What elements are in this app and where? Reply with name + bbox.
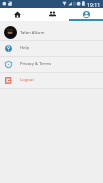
button[interactable]: People: [35, 8, 69, 21]
button[interactable]: Help: [0, 40, 103, 56]
button[interactable]: Logout: [0, 72, 103, 88]
staticText: Tafan Alkum: [20, 30, 45, 36]
staticText: 19:11: [87, 1, 101, 8]
staticText: Logout: [20, 77, 34, 83]
staticText: Help: [20, 45, 30, 51]
button[interactable]: Privacy & Terms: [0, 56, 103, 72]
button[interactable]: Account: [69, 8, 103, 21]
button[interactable]: Tafan Alkum: [0, 21, 103, 40]
staticText: Privacy & Terms: [20, 61, 52, 67]
button[interactable]: Home: [0, 8, 35, 21]
